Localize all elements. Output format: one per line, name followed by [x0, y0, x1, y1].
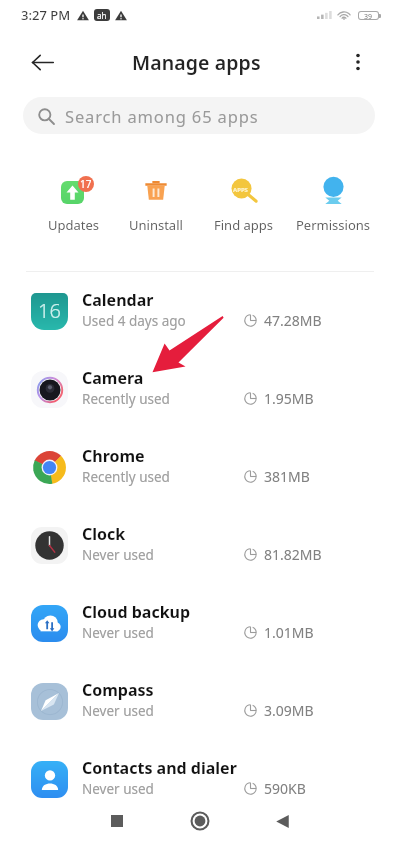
- staticText: ah: [97, 10, 107, 21]
- staticText: Manage apps: [132, 49, 261, 76]
- staticText: 17: [80, 177, 92, 191]
- staticText: 3.09MB: [264, 701, 314, 720]
- staticText: APPS: [233, 186, 248, 194]
- staticText: Permissions: [296, 216, 371, 234]
- staticText: Recently used: [82, 390, 170, 408]
- staticText: Calendar: [82, 289, 154, 311]
- button[interactable]: Chrome: [0, 428, 400, 506]
- button[interactable]: Search among 65 apps: [23, 97, 375, 134]
- staticText: Search among 65 apps: [65, 105, 259, 127]
- staticText: Never used: [82, 780, 154, 798]
- staticText: Cloud backup: [82, 601, 191, 623]
- button[interactable]: Back: [260, 799, 304, 843]
- staticText: Never used: [82, 624, 154, 642]
- button[interactable]: More options: [335, 39, 381, 85]
- button[interactable]: Uninstall: [116, 176, 196, 234]
- staticText: Never used: [82, 546, 154, 564]
- staticText: Updates: [48, 216, 100, 234]
- staticText: 16: [38, 297, 61, 324]
- button[interactable]: Compass: [0, 662, 400, 740]
- staticText: 1.95MB: [264, 389, 314, 408]
- staticText: 47.28MB: [264, 311, 322, 330]
- staticText: 81.82MB: [264, 545, 322, 564]
- button[interactable]: 16: [0, 272, 400, 350]
- button[interactable]: Back: [19, 39, 65, 85]
- staticText: Never used: [82, 702, 154, 720]
- staticText: Uninstall: [129, 216, 183, 234]
- button[interactable]: Clock: [0, 506, 400, 584]
- staticText: Camera: [82, 367, 144, 389]
- button[interactable]: Cloud backup: [0, 584, 400, 662]
- button[interactable]: Contacts and dialer: [0, 740, 400, 818]
- staticText: 381MB: [264, 467, 310, 486]
- button[interactable]: APPS: [204, 176, 284, 234]
- staticText: Clock: [82, 523, 126, 545]
- staticText: 590KB: [264, 779, 306, 798]
- staticText: Chrome: [82, 445, 145, 467]
- staticText: Contacts and dialer: [82, 757, 237, 779]
- staticText: 1.01MB: [264, 623, 314, 642]
- staticText: 39: [364, 12, 373, 19]
- staticText: Used 4 days ago: [82, 312, 186, 330]
- button[interactable]: Camera: [0, 350, 400, 428]
- staticText: 3:27 PM: [21, 6, 71, 24]
- button[interactable]: Recent apps: [95, 799, 139, 843]
- button[interactable]: 17: [34, 176, 114, 234]
- staticText: Recently used: [82, 468, 170, 486]
- staticText: Compass: [82, 679, 154, 701]
- staticText: Find apps: [214, 216, 274, 234]
- button[interactable]: Home: [178, 799, 222, 843]
- button[interactable]: Permissions: [293, 176, 373, 234]
